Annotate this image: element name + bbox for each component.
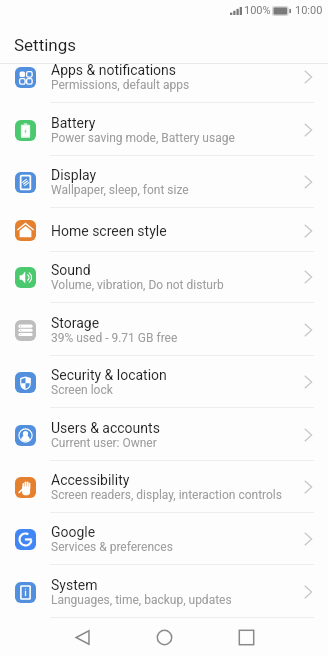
staticText: Storage — [51, 315, 100, 331]
button[interactable]: Users & accounts — [0, 409, 328, 461]
staticText: Current user: Owner — [51, 436, 157, 450]
button[interactable]: Home screen style — [0, 209, 328, 252]
staticText: Sound — [51, 262, 91, 278]
button[interactable]: Accessibility — [0, 461, 328, 513]
staticText: Volume, vibration, Do not disturb — [51, 278, 224, 292]
staticText: Accessibility — [51, 472, 130, 488]
button[interactable]: Home — [145, 618, 183, 656]
staticText: 39% used - 9.71 GB free — [51, 331, 178, 345]
staticText: Permissions, default apps — [51, 78, 190, 92]
staticText: Users & accounts — [51, 420, 160, 436]
button[interactable]: Sound — [0, 251, 328, 303]
staticText: Screen lock — [51, 383, 113, 397]
staticText: Security & location — [51, 367, 167, 383]
staticText: 100% — [244, 4, 271, 17]
button[interactable]: Google — [0, 513, 328, 565]
button[interactable]: Recents — [227, 618, 265, 656]
staticText: System — [51, 577, 98, 593]
staticText: Languages, time, backup, updates — [51, 593, 232, 607]
button[interactable]: System — [0, 566, 328, 618]
button[interactable]: Security & location — [0, 356, 328, 408]
staticText: Home screen style — [51, 223, 167, 239]
staticText: Screen readers, display, interaction con… — [51, 488, 282, 502]
button[interactable]: Apps & notifications — [0, 51, 328, 103]
button[interactable]: Back — [63, 618, 101, 656]
staticText: Settings — [14, 35, 77, 55]
staticText: Services & preferences — [51, 540, 173, 554]
staticText: Wallpaper, sleep, font size — [51, 183, 189, 197]
staticText: Battery — [51, 115, 96, 131]
button[interactable]: Storage — [0, 304, 328, 356]
staticText: Apps & notifications — [51, 62, 177, 78]
button[interactable]: Battery — [0, 104, 328, 156]
button[interactable]: Display — [0, 156, 328, 208]
staticText: Power saving mode, Battery usage — [51, 131, 235, 145]
staticText: 10:00 — [295, 4, 323, 17]
staticText: Google — [51, 524, 96, 540]
staticText: Display — [51, 167, 97, 183]
